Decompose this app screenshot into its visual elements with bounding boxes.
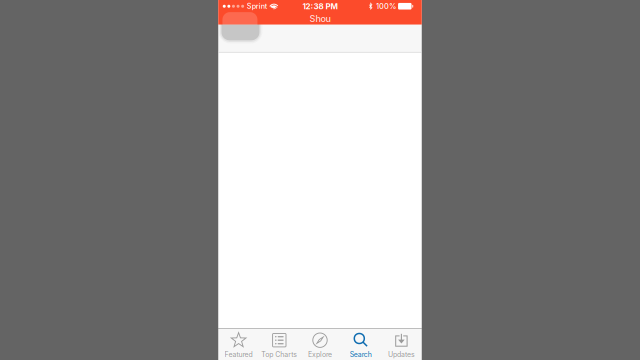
staticText: Sprint bbox=[247, 2, 267, 11]
button[interactable]: Updates bbox=[381, 329, 422, 360]
staticText: Top Charts bbox=[261, 350, 297, 359]
button[interactable]: Top Charts bbox=[259, 329, 300, 360]
button[interactable]: Featured bbox=[218, 329, 259, 360]
button[interactable]: Search bbox=[340, 329, 381, 360]
staticText: Featured bbox=[225, 350, 253, 359]
staticText: 12:38 PM bbox=[302, 1, 337, 11]
staticText: Explore bbox=[308, 350, 332, 359]
staticText: Updates bbox=[388, 350, 415, 359]
staticText: Shou bbox=[309, 13, 330, 24]
staticText: Search bbox=[350, 350, 372, 359]
button[interactable]: Explore bbox=[300, 329, 340, 360]
staticText: 100% bbox=[376, 2, 396, 11]
